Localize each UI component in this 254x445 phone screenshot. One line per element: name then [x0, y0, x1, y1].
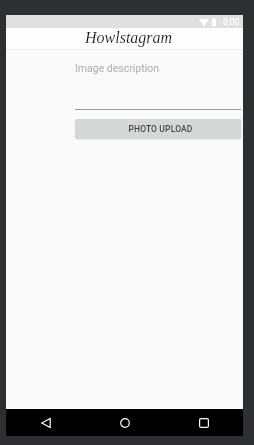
staticText: 8:00 — [223, 17, 240, 27]
staticText: Howlstagram — [85, 29, 173, 47]
staticText: Image description — [75, 62, 160, 74]
button[interactable]: Home — [85, 409, 164, 436]
button[interactable]: Back — [6, 409, 85, 436]
staticText: PHOTO UPLOAD — [128, 124, 193, 134]
button[interactable]: PHOTO UPLOAD — [75, 119, 241, 139]
button[interactable]: Recent apps — [164, 409, 243, 436]
